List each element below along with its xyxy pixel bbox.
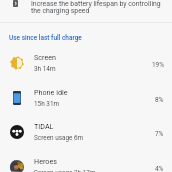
staticText: 8% [155, 96, 164, 104]
button[interactable]: Heroes [0, 151, 172, 172]
staticText: 15h 31m [34, 100, 60, 108]
staticText: 19% [152, 61, 164, 69]
other: Protect battery [13, 0, 18, 7]
button[interactable]: Phone idle [0, 82, 172, 116]
staticText: Screen [34, 53, 56, 61]
button[interactable]: Protect battery [0, 0, 172, 22]
staticText: 4% [155, 165, 164, 172]
button[interactable]: Screen [0, 47, 172, 81]
button[interactable]: TIDAL [0, 116, 172, 150]
staticText: Screen usage 2h 17m [34, 169, 96, 172]
staticText: Screen usage 6m [34, 134, 84, 142]
staticText: Phone idle [34, 88, 68, 96]
staticText: 7% [155, 130, 164, 138]
staticText: Heroes [34, 157, 57, 165]
staticText: 3h 14m [34, 65, 56, 73]
staticText: Increase the battery lifespan by control… [31, 0, 161, 15]
button[interactable]: Use since last full charge [9, 34, 82, 42]
staticText: TIDAL [34, 122, 54, 130]
